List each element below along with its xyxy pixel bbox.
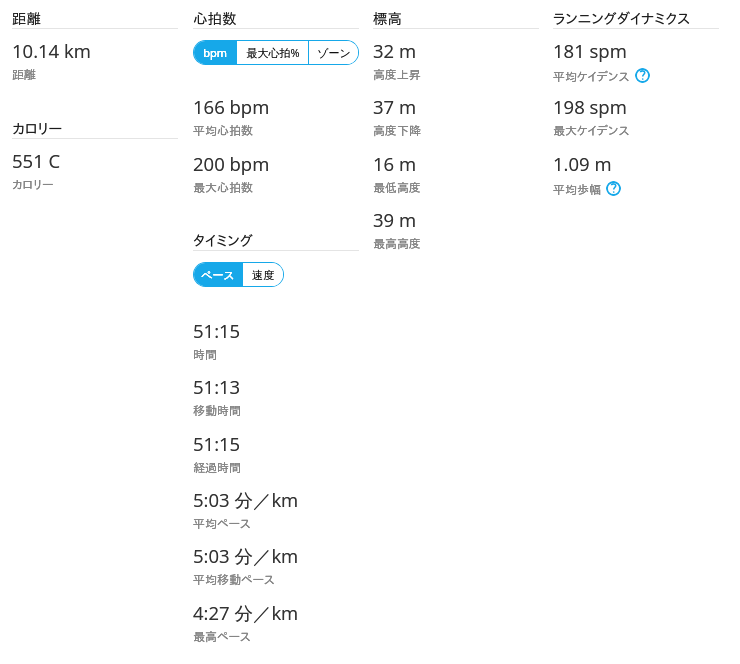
staticText: 距離 (12, 68, 36, 80)
staticText: 高度下降 (373, 124, 421, 136)
staticText: 37 m (373, 94, 417, 119)
staticText: 速度 (252, 268, 274, 282)
staticText: 200 bpm (193, 151, 270, 176)
staticText: 37 m (373, 94, 417, 119)
staticText: 標高 (373, 11, 402, 26)
staticText: 平均ペース (193, 517, 251, 529)
staticText: 5:03 分／km (193, 543, 299, 568)
staticText: ゾーン (317, 46, 351, 60)
staticText: 平均心拍数 (193, 124, 253, 136)
staticText: 51:15 (193, 431, 241, 456)
staticText: 198 spm (553, 94, 627, 119)
staticText: 移動時間 (193, 404, 241, 416)
button[interactable]: ゾーン (309, 41, 358, 64)
staticText: 最大ケイデンス (553, 124, 630, 136)
staticText: カロリー (12, 121, 63, 136)
staticText: 10.14 km (12, 38, 91, 63)
staticText: 1.09 m (553, 151, 612, 176)
staticText: カロリー (12, 178, 54, 190)
staticText: 181 spm (553, 38, 627, 63)
staticText: 166 bpm (193, 94, 270, 119)
staticText: bpm (203, 45, 227, 60)
staticText: 最高高度 (373, 237, 421, 249)
staticText: 166 bpm (193, 94, 270, 119)
staticText: bpm (203, 45, 227, 60)
staticText: 32 m (373, 38, 417, 63)
staticText: 経過時間 (193, 461, 241, 473)
staticText: 距離 (12, 11, 41, 26)
staticText: 平均歩幅 (553, 183, 601, 195)
staticText: 標高 (373, 11, 402, 26)
staticText: カロリー (12, 121, 63, 136)
staticText: 10.14 km (12, 38, 91, 63)
staticText: タイミング (193, 233, 253, 248)
staticText: 最大心拍% (246, 45, 300, 60)
staticText: 最高高度 (373, 237, 421, 249)
staticText: カロリー (12, 178, 54, 190)
staticText: 551 C (12, 148, 61, 173)
staticText: ランニングダイナミクス (553, 11, 691, 26)
staticText: 39 m (373, 207, 417, 232)
staticText: 200 bpm (193, 151, 270, 176)
staticText: 1.09 m (553, 151, 612, 176)
staticText: 最高ペース (193, 630, 251, 642)
staticText: 51:15 (193, 318, 241, 343)
staticText: タイミング (193, 233, 253, 248)
staticText: 4:27 分／km (193, 600, 299, 625)
button[interactable]: 最大心拍% (237, 41, 308, 64)
staticText: ゾーン (317, 46, 351, 60)
button[interactable]: ペース (194, 263, 242, 286)
staticText: 最大心拍% (246, 45, 300, 60)
staticText: 最大心拍数 (193, 181, 253, 193)
staticText: ペース (201, 268, 235, 282)
button[interactable]: Help (606, 181, 621, 196)
staticText: 高度上昇 (373, 68, 421, 80)
staticText: 最低高度 (373, 181, 421, 193)
staticText: 平均心拍数 (193, 124, 253, 136)
staticText: 経過時間 (193, 461, 241, 473)
staticText: 最低高度 (373, 181, 421, 193)
staticText: 551 C (12, 148, 61, 173)
staticText: 181 spm (553, 38, 627, 63)
staticText: 32 m (373, 38, 417, 63)
staticText: ペース (201, 268, 235, 282)
button[interactable]: 速度 (243, 263, 283, 286)
staticText: 平均ケイデンス (553, 70, 630, 82)
staticText: 高度下降 (373, 124, 421, 136)
staticText: 16 m (373, 151, 417, 176)
staticText: 距離 (12, 68, 36, 80)
staticText: 平均ペース (193, 517, 251, 529)
staticText: 最大ケイデンス (553, 124, 630, 136)
staticText: 時間 (193, 348, 217, 360)
staticText: 4:27 分／km (193, 600, 299, 625)
staticText: 高度上昇 (373, 68, 421, 80)
staticText: 速度 (252, 268, 274, 282)
staticText: 51:15 (193, 318, 241, 343)
staticText: 51:13 (193, 374, 241, 399)
staticText: 16 m (373, 151, 417, 176)
staticText: 平均歩幅 (553, 183, 601, 195)
staticText: 心拍数 (193, 11, 237, 26)
staticText: 心拍数 (193, 11, 237, 26)
staticText: 39 m (373, 207, 417, 232)
staticText: ランニングダイナミクス (553, 11, 691, 26)
staticText: 時間 (193, 348, 217, 360)
staticText: 51:13 (193, 374, 241, 399)
staticText: 5:03 分／km (193, 543, 299, 568)
staticText: 最高ペース (193, 630, 251, 642)
staticText: 5:03 分／km (193, 487, 299, 512)
button[interactable]: Help (635, 68, 650, 83)
staticText: 距離 (12, 11, 41, 26)
staticText: 平均移動ペース (193, 573, 275, 585)
staticText: 平均移動ペース (193, 573, 275, 585)
staticText: 198 spm (553, 94, 627, 119)
staticText: 平均ケイデンス (553, 70, 630, 82)
staticText: 51:15 (193, 431, 241, 456)
staticText: 5:03 分／km (193, 487, 299, 512)
button[interactable]: bpm (194, 41, 236, 64)
staticText: 最大心拍数 (193, 181, 253, 193)
staticText: 移動時間 (193, 404, 241, 416)
